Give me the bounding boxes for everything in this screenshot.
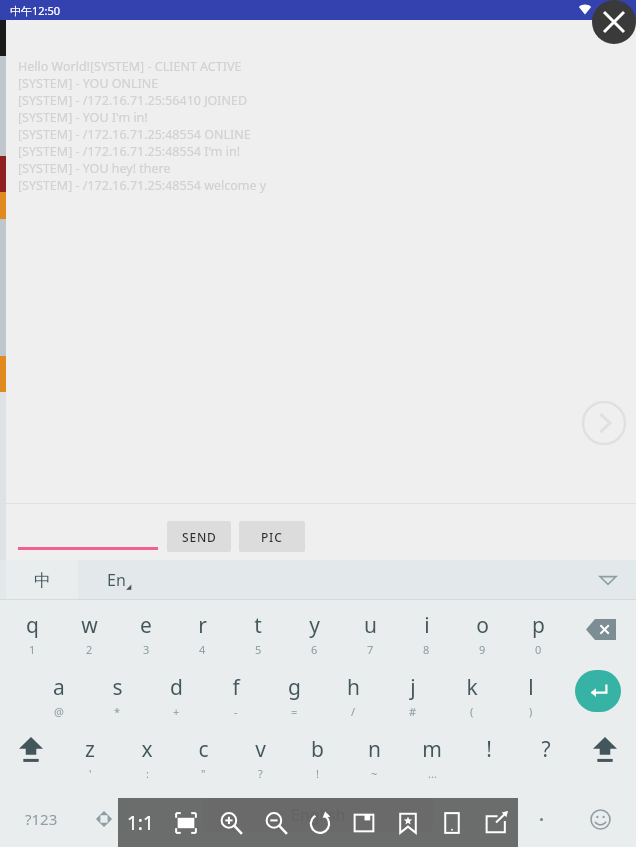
button[interactable]: b [289,728,346,790]
staticText: p [532,611,545,640]
staticText: h [347,673,360,702]
button[interactable]: Backspace [566,604,636,666]
button[interactable]: y [286,604,342,666]
button[interactable]: Zoom in [208,798,253,847]
staticText: n [368,735,381,764]
staticText: [SYSTEM] - /172.16.71.25:56410 JOINED [18,92,248,109]
staticText: * [114,704,121,719]
button[interactable]: Close [592,0,636,44]
button[interactable]: s [88,666,147,728]
staticText: ◢ [126,583,132,591]
button[interactable]: Enter [560,666,636,728]
button[interactable]: Shift [574,728,636,790]
button[interactable]: ? [517,728,574,790]
staticText: + [173,704,180,719]
button[interactable]: Zoom out [253,798,298,847]
staticText: 4 [199,642,206,657]
button[interactable]: English [203,798,433,832]
button[interactable]: k [442,666,501,728]
staticText: - [234,704,238,719]
staticText: [SYSTEM] - /172.16.71.25:48554 ONLINE [18,126,251,143]
staticText: 3 [143,642,150,657]
staticText: ' [89,766,92,781]
button[interactable]: i [398,604,454,666]
button[interactable]: Save [342,798,386,847]
staticText: m [422,735,442,764]
button[interactable]: Emoji [582,801,618,837]
button[interactable]: n [346,728,403,790]
staticText: ) [529,704,533,719]
staticText: v [255,735,266,764]
staticText: c [198,735,209,764]
staticText: [SYSTEM] - YOU I'm in! [18,109,148,126]
button[interactable]: PIC [239,521,305,552]
button[interactable]: v [232,728,289,790]
staticText: [SYSTEM] - /172.16.71.25:48554 welcome y [18,177,267,194]
button[interactable]: m [403,728,460,790]
button[interactable]: Share [474,798,518,847]
button[interactable]: 中 [6,560,78,600]
staticText: f [232,673,240,702]
button[interactable]: p [510,604,566,666]
button[interactable]: l [501,666,560,728]
button[interactable]: e [118,604,174,666]
staticText: ( [470,704,474,719]
staticText: 7 [367,642,374,657]
staticText: l [528,673,534,702]
button[interactable]: u [342,604,398,666]
staticText: " [201,766,206,781]
staticText: z [85,735,95,764]
button[interactable]: x [118,728,175,790]
staticText: ! [316,766,319,781]
staticText: 0 [535,642,542,657]
staticText: ! [486,735,492,764]
button[interactable]: ! [460,728,517,790]
button[interactable]: Bookmark [386,798,430,847]
staticText: r [198,611,207,640]
button[interactable]: Rotate [298,798,342,847]
button[interactable]: Period [536,814,546,824]
button[interactable]: Move cursor [76,790,132,847]
staticText: g [288,673,301,702]
staticText: a [53,673,65,702]
button[interactable]: f [206,666,265,728]
button[interactable]: En [84,560,154,600]
staticText: PIC [261,529,283,545]
staticText: k [466,673,478,702]
button[interactable]: d [147,666,206,728]
staticText: u [364,611,377,640]
button[interactable]: Hide keyboard [598,570,618,590]
staticText: w [81,611,98,640]
button[interactable]: q [4,604,61,666]
button[interactable]: w [61,604,118,666]
button[interactable]: a [30,666,88,728]
button[interactable]: j [383,666,442,728]
staticText: b [311,735,324,764]
staticText: [SYSTEM] - YOU ONLINE [18,75,159,92]
staticText: x [141,735,153,764]
staticText: 2 [86,642,93,657]
button[interactable]: SEND [167,521,231,552]
button[interactable]: Actual size [118,798,163,847]
button[interactable]: h [324,666,383,728]
staticText: / [351,704,356,719]
button[interactable]: Fit to screen [163,798,208,847]
button[interactable]: Shift [0,728,61,790]
staticText: 中 [34,570,51,591]
button[interactable]: g [265,666,324,728]
button[interactable]: z [61,728,118,790]
button[interactable]: Next [581,400,627,446]
staticText: 中午12:50 [10,3,61,18]
staticText: @ [54,704,64,719]
button[interactable]: r [174,604,230,666]
button[interactable]: t [230,604,286,666]
button[interactable]: o [454,604,510,666]
staticText: English [291,804,346,826]
staticText: [SYSTEM] - /172.16.71.25:48554 I'm in! [18,143,241,160]
staticText: # [409,704,417,719]
staticText: ? [258,766,263,781]
button[interactable]: c [175,728,232,790]
button[interactable]: Device [430,798,474,847]
staticText: q [26,611,39,640]
button[interactable]: ?123 [6,790,76,847]
